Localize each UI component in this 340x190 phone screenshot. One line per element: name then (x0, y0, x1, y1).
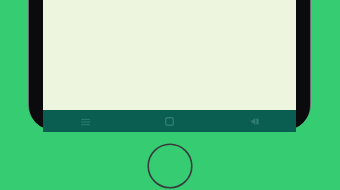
button[interactable]: Home button (147, 143, 193, 189)
button[interactable]: Recent apps (43, 110, 127, 132)
button[interactable]: Back (212, 110, 296, 132)
button[interactable]: Home (127, 110, 212, 132)
